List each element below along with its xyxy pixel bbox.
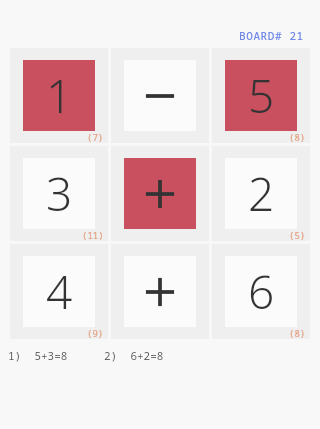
staticText: (5): [289, 229, 306, 241]
button[interactable]: Plus tile: [111, 146, 209, 241]
staticText: 4: [46, 260, 73, 323]
staticText: (7): [87, 131, 104, 143]
staticText: 1) 5+3=8: [8, 348, 68, 363]
staticText: 6: [248, 260, 275, 323]
button[interactable]: Number tile 5: [212, 48, 310, 143]
staticText: 1: [46, 64, 73, 127]
staticText: BOARD# 21: [239, 28, 304, 43]
staticText: 3: [46, 162, 73, 225]
button[interactable]: Number tile 3: [10, 146, 108, 241]
button[interactable]: Plus tile: [111, 244, 209, 339]
button[interactable]: Number tile 2: [212, 146, 310, 241]
staticText: (8): [289, 131, 306, 143]
staticText: 2) 6+2=8: [104, 348, 164, 363]
staticText: 5: [248, 64, 275, 127]
staticText: (11): [82, 229, 104, 241]
button[interactable]: Number tile 1: [10, 48, 108, 143]
button[interactable]: Number tile 6: [212, 244, 310, 339]
button[interactable]: Minus tile: [111, 48, 209, 143]
staticText: 2: [248, 162, 275, 225]
staticText: (9): [87, 327, 104, 339]
button[interactable]: Number tile 4: [10, 244, 108, 339]
staticText: (8): [289, 327, 306, 339]
